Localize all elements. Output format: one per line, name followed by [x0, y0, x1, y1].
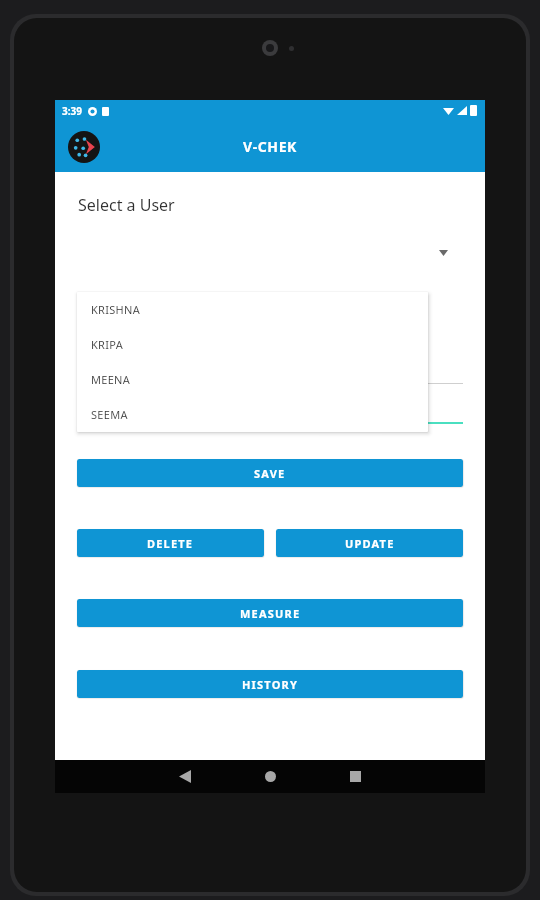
staticText: Systole (80-180) — [77, 404, 166, 420]
button[interactable]: Systole (80-180) — [77, 401, 249, 424]
staticText: Name — [77, 362, 120, 382]
staticText: SEEMA — [91, 407, 128, 422]
button[interactable]: KRIPA — [77, 327, 428, 362]
staticText: 3:39 — [62, 104, 82, 118]
button[interactable]: Name — [77, 361, 463, 384]
button[interactable]: App logo — [67, 130, 101, 164]
staticText: Select a User — [78, 194, 175, 216]
staticText: MEENA — [91, 372, 131, 387]
button[interactable]: Back — [168, 760, 202, 793]
button[interactable]: MEENA — [77, 362, 428, 397]
button[interactable]: SAVE — [77, 459, 463, 487]
button[interactable]: Recent apps — [338, 760, 372, 793]
button[interactable]: DELETE — [77, 529, 264, 557]
button[interactable]: Diastole (50-120) — [280, 400, 463, 424]
staticText: V-CHEK — [243, 137, 298, 156]
staticText: KRIPA — [91, 337, 124, 352]
staticText: SAVE — [254, 466, 286, 481]
button[interactable] — [77, 238, 463, 268]
staticText: DELETE — [147, 536, 194, 551]
button[interactable]: Home — [253, 760, 287, 793]
staticText: KRISHNA — [91, 302, 141, 317]
button[interactable]: HISTORY — [77, 670, 463, 698]
button[interactable]: KRISHNA — [77, 292, 428, 327]
staticText: UPDATE — [345, 536, 395, 551]
staticText: MEASURE — [240, 606, 301, 621]
button[interactable]: MEASURE — [77, 599, 463, 627]
staticText: HISTORY — [242, 677, 299, 692]
button[interactable]: UPDATE — [276, 529, 463, 557]
button[interactable]: SEEMA — [77, 397, 428, 432]
